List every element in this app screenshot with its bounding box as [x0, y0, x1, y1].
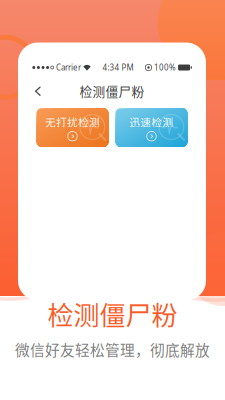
button[interactable]: 无打扰检测: [37, 108, 108, 146]
staticText: 无打扰检测: [45, 114, 100, 129]
staticText: 4:34 PM: [102, 62, 133, 73]
staticText: 检测僵尸粉: [47, 295, 177, 333]
staticText: 微信好友轻松管理，彻底解放: [15, 339, 210, 360]
button[interactable]: Back: [30, 81, 46, 101]
staticText: Carrier: [56, 62, 81, 73]
staticText: 检测僵尸粉: [79, 82, 144, 100]
staticText: 迅速检测: [129, 114, 173, 129]
staticText: 100%: [154, 62, 176, 73]
button[interactable]: 迅速检测: [116, 108, 187, 146]
